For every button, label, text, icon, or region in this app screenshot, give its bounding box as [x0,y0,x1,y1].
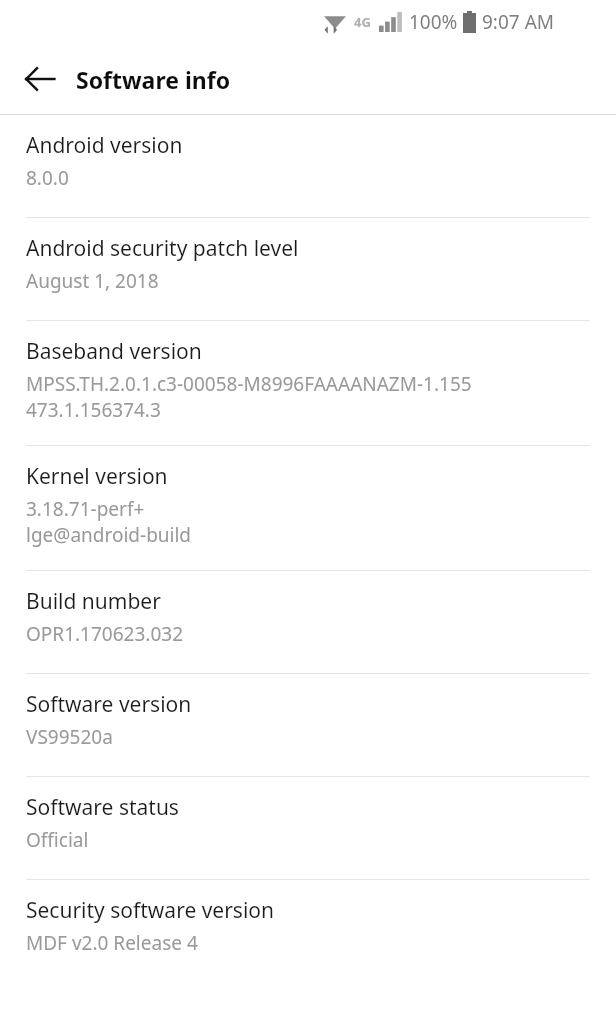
staticText: Android security patch level [26,234,299,263]
staticText: Software version [26,690,192,719]
button[interactable]: Security software version [0,880,616,982]
staticText: Security software version [26,896,275,925]
staticText: 3.18.71-perf+ [26,496,145,522]
button[interactable]: Back [12,51,68,107]
staticText: 473.1.156374.3 [26,397,161,423]
button[interactable]: Android security patch level [0,218,616,320]
staticText: Build number [26,587,161,616]
button[interactable]: Kernel version [0,446,616,570]
staticText: 100% [409,9,458,35]
button[interactable]: Build number [0,571,616,673]
staticText: 9:07 AM [482,9,555,35]
button[interactable]: Baseband version [0,321,616,445]
staticText: Software status [26,793,179,822]
button[interactable]: Software version [0,674,616,776]
staticText: Android version [26,131,183,160]
staticText: lge@android-build [26,522,192,548]
staticText: 8.0.0 [26,165,69,191]
staticText: Kernel version [26,462,168,491]
staticText: Software info [76,64,231,95]
button[interactable]: Software status [0,777,616,879]
staticText: Official [26,827,89,853]
staticText: OPR1.170623.032 [26,621,184,647]
button[interactable]: Android version [0,115,616,217]
staticText: MDF v2.0 Release 4 [26,930,198,956]
staticText: August 1, 2018 [26,268,159,294]
staticText: 4G [354,13,371,31]
staticText: VS99520a [26,724,113,750]
staticText: Baseband version [26,337,202,366]
staticText: MPSS.TH.2.0.1.c3-00058-M8996FAAAANAZM-1.… [26,371,472,397]
